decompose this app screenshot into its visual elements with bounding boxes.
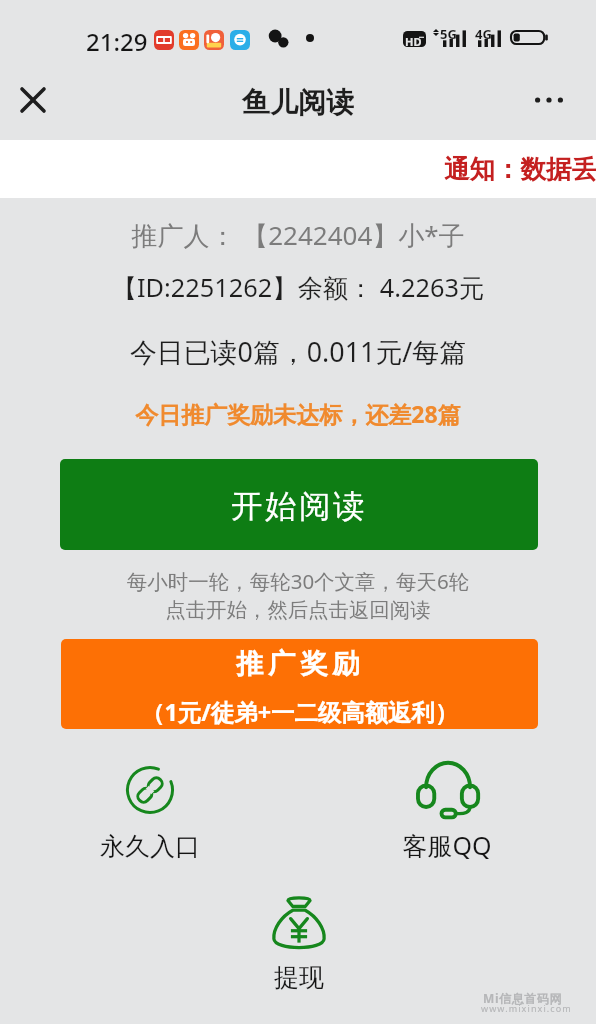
staticText: 点击开始，然后点击返回阅读 xyxy=(0,597,596,623)
button[interactable]: 客服QQ xyxy=(377,751,517,862)
staticText: 每小时一轮，每轮30个文章，每天6轮 xyxy=(0,567,596,595)
staticText: 永久入口 xyxy=(80,831,220,862)
staticText: 今日推广奖励未达标，还差28篇 xyxy=(0,398,596,429)
staticText: 今日已读0篇，0.011元/每篇 xyxy=(0,333,596,370)
staticText: 21:29 xyxy=(86,25,148,58)
staticText: 鱼儿阅读 xyxy=(242,85,354,120)
button[interactable]: Close xyxy=(9,76,57,124)
staticText: HD xyxy=(405,34,422,49)
button[interactable]: 开始阅读 xyxy=(60,459,538,550)
button[interactable]: 永久入口 xyxy=(80,756,220,865)
staticText: 4G xyxy=(475,25,492,43)
staticText: （1元/徒弟+一二级高额返利） xyxy=(141,696,459,728)
staticText: 客服QQ xyxy=(377,828,517,862)
staticText: 推广人： 【2242404】小*子 xyxy=(0,217,596,253)
staticText: 【ID:2251262】余额： 4.2263元 xyxy=(0,270,596,305)
button[interactable]: 通知：数据丢失请联系客服 xyxy=(0,140,596,198)
staticText: 通知：数据丢失请联系客服 xyxy=(444,153,596,185)
staticText: 提现 xyxy=(229,962,369,993)
button[interactable]: 推广奖励 xyxy=(61,639,538,729)
staticText: Mi信息首码网 xyxy=(483,990,563,1006)
staticText: 推广奖励 xyxy=(236,647,365,681)
staticText: 5G xyxy=(440,25,457,43)
staticText: 开始阅读 xyxy=(231,487,368,527)
button[interactable]: 提现 xyxy=(229,887,369,996)
button[interactable]: More options xyxy=(525,76,573,124)
staticText: www.mixinxi.com xyxy=(481,1002,572,1014)
